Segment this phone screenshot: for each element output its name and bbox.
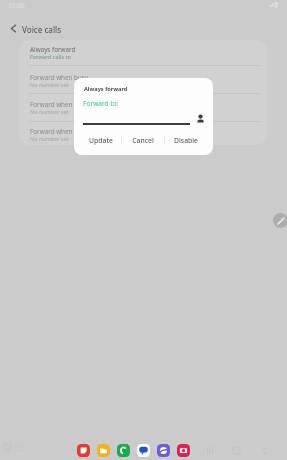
staticText: 10:00 (8, 1, 25, 10)
button[interactable]: Pick contact (192, 110, 208, 126)
button[interactable]: Cancel (122, 131, 164, 149)
staticText: Always forward (30, 45, 76, 54)
staticText: Forward calls to (30, 53, 71, 60)
button[interactable]: Camera (176, 443, 190, 457)
button[interactable]: Update (80, 131, 121, 149)
button[interactable]: Forward when busy (19, 66, 267, 93)
staticText: Forward when busy (30, 73, 89, 82)
button[interactable]: Forward when unanswered (19, 94, 267, 121)
button[interactable]: Messages (136, 443, 150, 457)
staticText: Disable (174, 136, 198, 145)
button[interactable]: Air command (273, 213, 287, 228)
button[interactable]: Disable (165, 131, 207, 149)
staticText: Forward to: (83, 99, 119, 108)
staticText: Voice calls (22, 24, 62, 35)
button[interactable]: Forward when unreachable (19, 122, 267, 145)
staticText: No number set (30, 108, 69, 115)
staticText: Cancel (132, 136, 154, 145)
button[interactable]: My Files (96, 443, 110, 457)
button[interactable]: Always forward (19, 40, 267, 65)
button[interactable]: Internet (156, 443, 170, 457)
staticText: No number set (30, 81, 69, 88)
staticText: No number set (30, 135, 69, 142)
staticText: Forward when unanswered (30, 100, 111, 109)
button[interactable]: Samsung Notes (76, 443, 90, 457)
staticText: Update (89, 136, 113, 145)
button[interactable]: Phone (116, 443, 130, 457)
staticText: Always forward (84, 85, 128, 93)
staticText: Forward when unreachable (30, 127, 111, 136)
button[interactable]: Back (2, 17, 24, 39)
